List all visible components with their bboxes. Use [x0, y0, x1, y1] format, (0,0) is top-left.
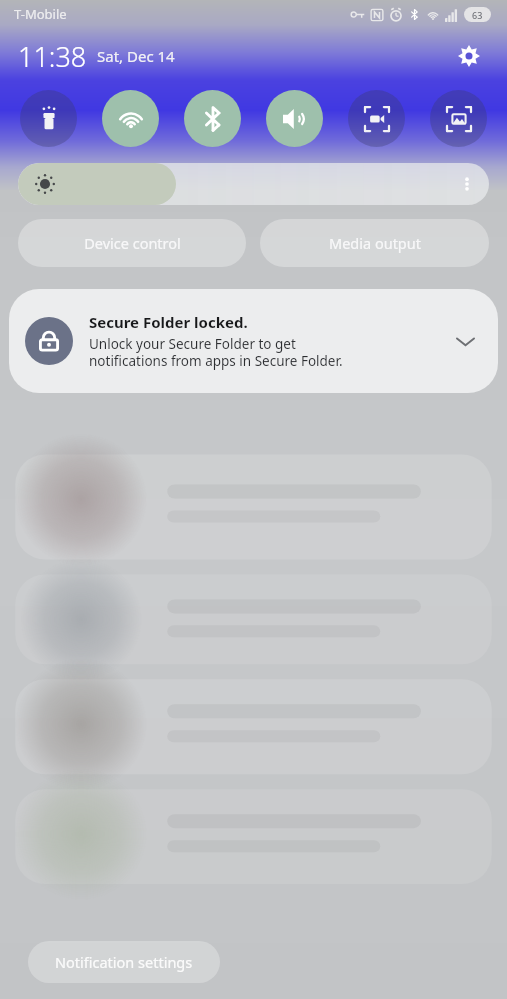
button[interactable]: Notification settings	[28, 941, 220, 983]
button[interactable]: Expand	[448, 324, 482, 358]
button[interactable]: Sound	[266, 90, 323, 147]
staticText: Sat, Dec 14	[97, 46, 175, 66]
staticText: 11:38	[18, 38, 87, 75]
staticText: T-Mobile	[14, 5, 67, 23]
staticText: 63	[472, 9, 483, 21]
staticText: Unlock your Secure Folder to get notific…	[89, 335, 343, 370]
button[interactable]: Settings	[449, 36, 489, 76]
button[interactable]	[18, 163, 489, 205]
button[interactable]: Bluetooth	[184, 90, 241, 147]
staticText: Media output	[329, 233, 421, 253]
button[interactable]: Screenshot	[430, 90, 487, 147]
button[interactable]: Flashlight	[20, 90, 77, 147]
button[interactable]: Screen recorder	[348, 90, 405, 147]
staticText: Notification settings	[55, 952, 193, 972]
button[interactable]: Wi-Fi	[102, 90, 159, 147]
button[interactable]: Device control	[18, 219, 246, 267]
staticText: Device control	[84, 233, 181, 253]
button[interactable]: Secure Folder locked.	[9, 289, 498, 393]
button[interactable]: Media output	[260, 219, 489, 267]
staticText: Secure Folder locked.	[89, 312, 248, 332]
